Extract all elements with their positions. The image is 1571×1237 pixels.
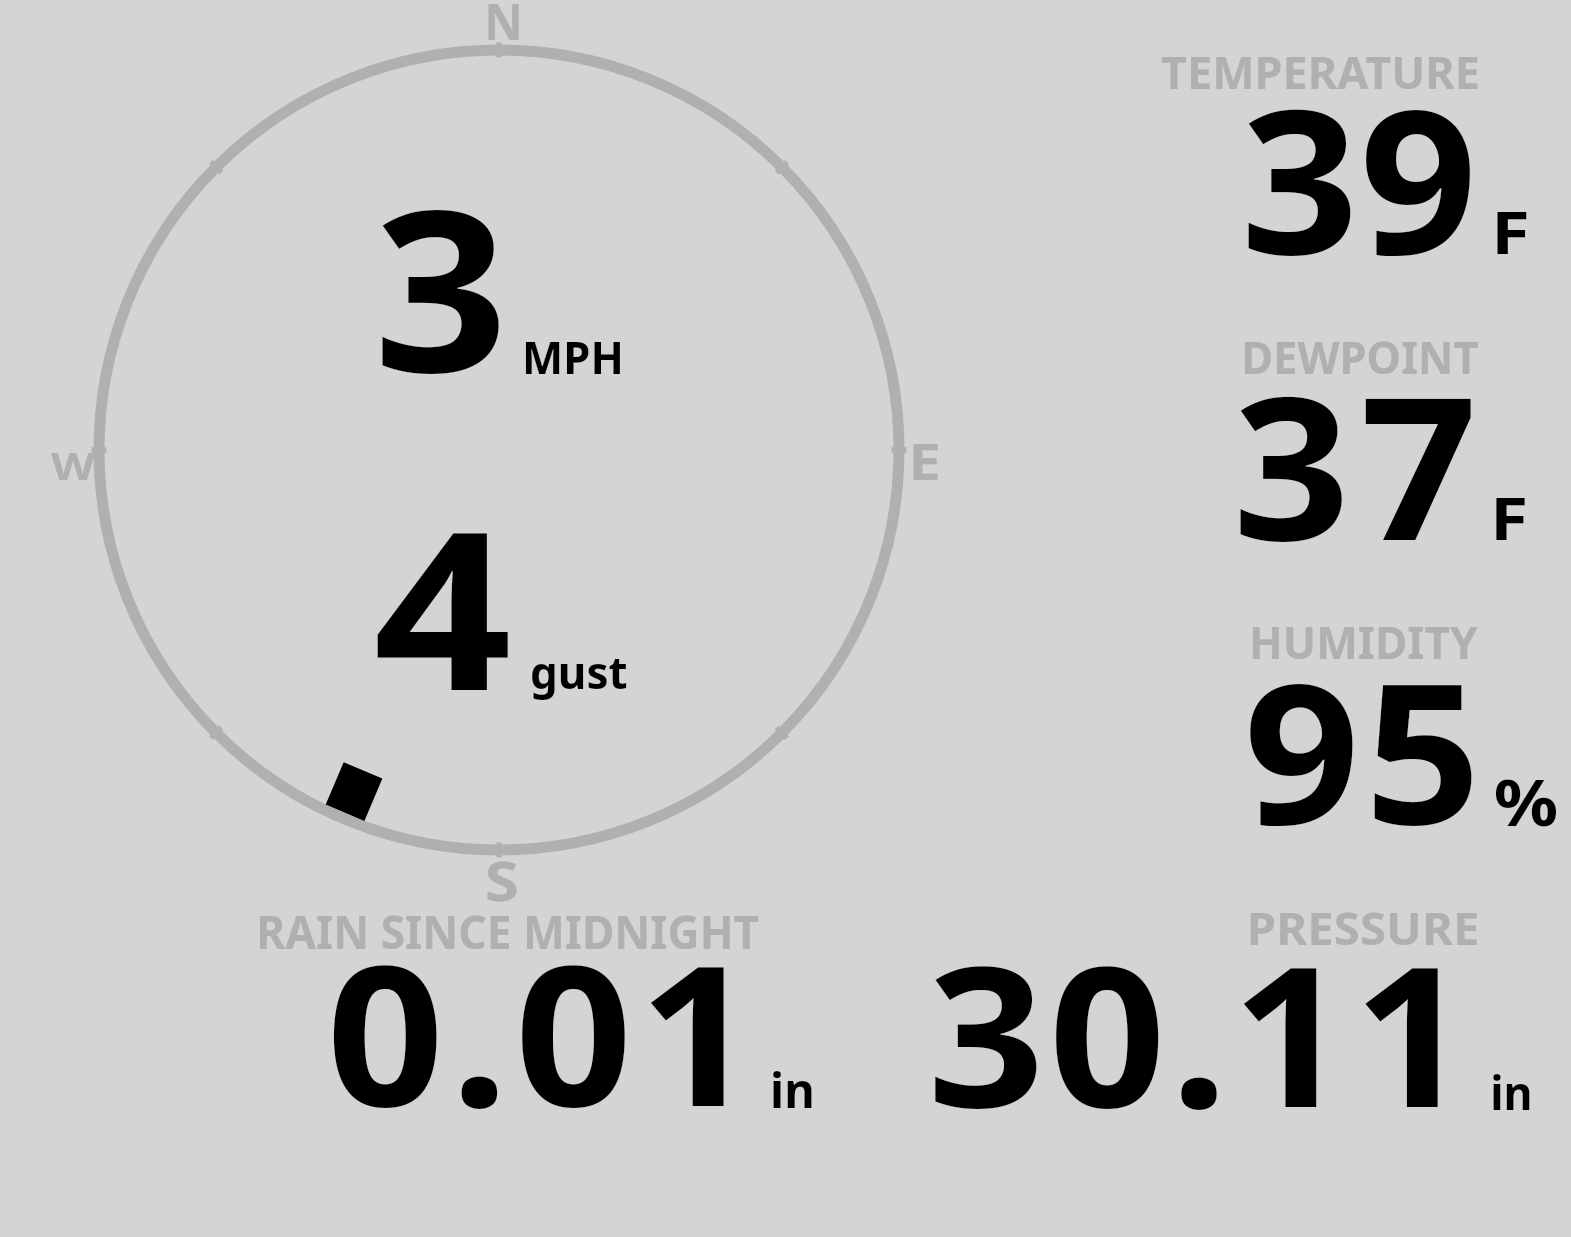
other: Weather station readings [0,0,1571,1237]
button[interactable]: Wind 3 MPH gusting 4, south-southwest [96,42,904,857]
button[interactable]: Dewpoint 37 F [1150,320,1570,550]
button[interactable]: Pressure 30.11 in [900,900,1540,1115]
button[interactable]: Humidity 95 percent [1150,600,1570,840]
button[interactable]: Rain since midnight 0.01 in [250,900,770,1115]
button[interactable]: Temperature 39 F [1150,40,1570,270]
